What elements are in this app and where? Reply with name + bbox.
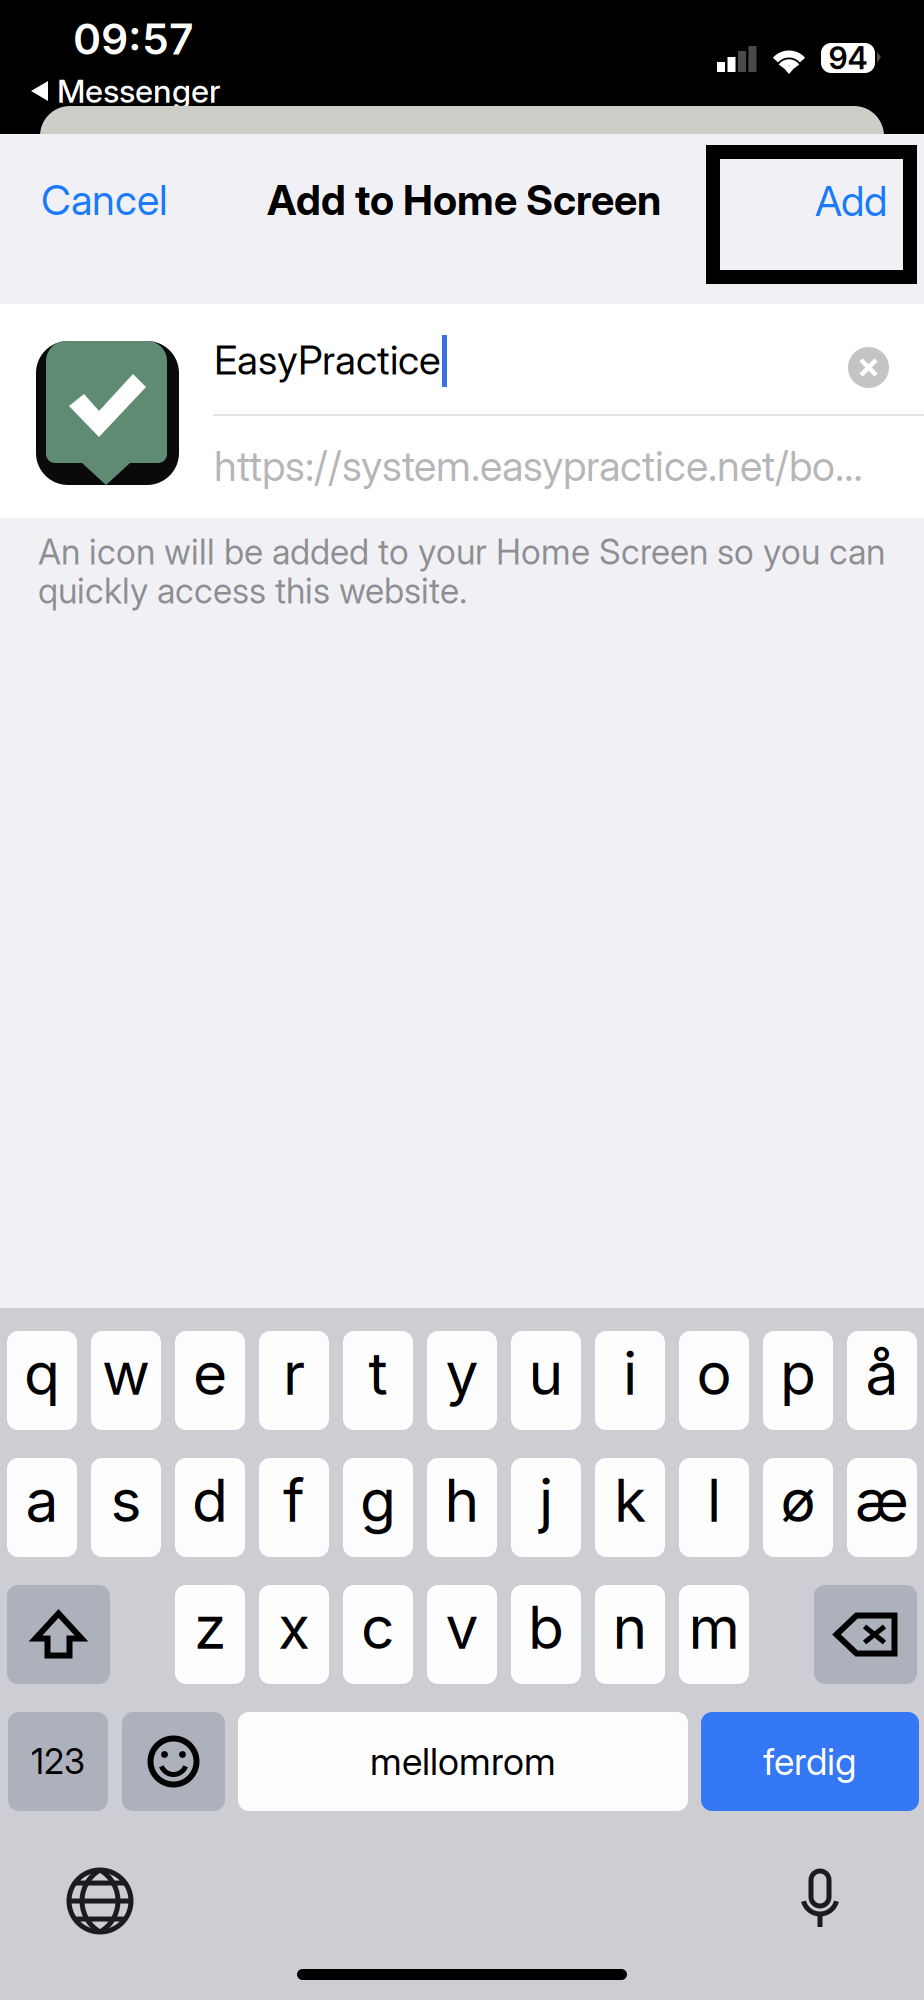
staticText: a [25, 1465, 58, 1536]
button[interactable]: h [427, 1458, 497, 1557]
staticText: p [780, 1338, 816, 1409]
button[interactable]: z [175, 1585, 245, 1684]
button[interactable]: Clear text [848, 347, 889, 388]
button[interactable]: n [595, 1585, 665, 1684]
staticText: å [865, 1338, 898, 1409]
button[interactable]: g [343, 1458, 413, 1557]
staticText: m [688, 1592, 739, 1663]
staticText: EasyPractice [214, 336, 441, 384]
button[interactable]: o [679, 1331, 749, 1430]
staticText: https://system.easypractice.net/bo… [214, 441, 863, 491]
staticText: z [194, 1592, 226, 1663]
button[interactable]: Emoji [122, 1712, 225, 1811]
staticText: c [361, 1592, 395, 1663]
button[interactable]: ø [763, 1458, 833, 1557]
staticText: quickly access this website. [38, 570, 467, 612]
button[interactable]: Shift [7, 1585, 110, 1684]
button[interactable]: e [175, 1331, 245, 1430]
button[interactable]: f [259, 1458, 329, 1557]
staticText: x [278, 1592, 310, 1663]
button[interactable]: æ [847, 1458, 917, 1557]
button[interactable]: p [763, 1331, 833, 1430]
button[interactable]: y [427, 1331, 497, 1430]
staticText: mellomrom [370, 1739, 556, 1784]
staticText: 123 [31, 1740, 85, 1782]
staticText: w [102, 1338, 150, 1409]
button[interactable]: d [175, 1458, 245, 1557]
staticText: 94 [828, 39, 867, 76]
staticText: y [445, 1338, 478, 1409]
button[interactable]: u [511, 1331, 581, 1430]
staticText: æ [855, 1465, 909, 1536]
staticText: u [528, 1338, 563, 1409]
button[interactable]: t [343, 1331, 413, 1430]
button[interactable]: l [679, 1458, 749, 1557]
button[interactable]: Next keyboard [63, 1864, 137, 1938]
staticText: Messenger [57, 72, 221, 110]
staticText: f [283, 1465, 305, 1536]
button[interactable]: Cancel [41, 154, 221, 246]
button[interactable]: x [259, 1585, 329, 1684]
staticText: k [614, 1465, 646, 1536]
staticText: v [445, 1592, 478, 1663]
button[interactable]: j [511, 1458, 581, 1557]
staticText: i [623, 1338, 637, 1409]
staticText: 09:57 [73, 13, 194, 65]
button[interactable]: k [595, 1458, 665, 1557]
staticText: ferdig [763, 1739, 857, 1784]
staticText: Add [815, 176, 887, 226]
button[interactable]: 123 [8, 1712, 108, 1811]
button[interactable]: Add [706, 145, 917, 284]
button[interactable]: a [7, 1458, 77, 1557]
staticText: Cancel [41, 175, 168, 225]
button[interactable]: b [511, 1585, 581, 1684]
button[interactable]: m [679, 1585, 749, 1684]
button[interactable]: ferdig [701, 1712, 919, 1811]
button[interactable]: w [91, 1331, 161, 1430]
staticText: g [360, 1465, 396, 1536]
staticText: s [110, 1465, 141, 1536]
button[interactable]: Delete [814, 1585, 917, 1684]
button[interactable]: c [343, 1585, 413, 1684]
staticText: j [539, 1465, 553, 1536]
staticText: l [707, 1465, 721, 1536]
staticText: An icon will be added to your Home Scree… [38, 531, 885, 573]
staticText: o [696, 1338, 731, 1409]
button[interactable]: s [91, 1458, 161, 1557]
button[interactable]: q [7, 1331, 77, 1430]
staticText: e [193, 1338, 227, 1409]
staticText: d [192, 1465, 228, 1536]
staticText: ø [780, 1465, 815, 1536]
staticText: Add to Home Screen [267, 175, 661, 225]
button[interactable]: mellomrom [238, 1712, 688, 1811]
staticText: t [368, 1338, 387, 1409]
staticText: r [283, 1338, 305, 1409]
button[interactable]: i [595, 1331, 665, 1430]
staticText: n [612, 1592, 647, 1663]
button[interactable]: å [847, 1331, 917, 1430]
button[interactable]: Dictation [790, 1864, 850, 1938]
button[interactable]: r [259, 1331, 329, 1430]
staticText: q [24, 1338, 60, 1409]
button[interactable]: v [427, 1585, 497, 1684]
staticText: b [528, 1592, 564, 1663]
staticText: h [444, 1465, 479, 1536]
